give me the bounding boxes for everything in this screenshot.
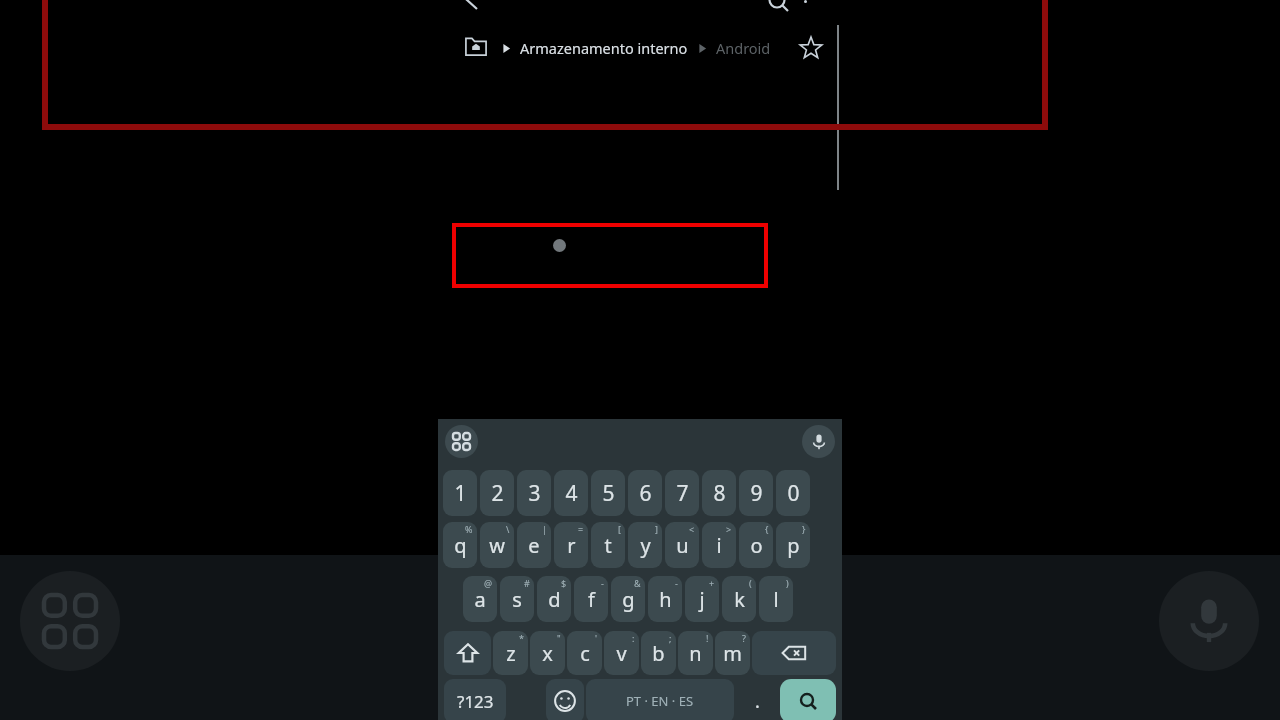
button[interactable]: n — [678, 631, 713, 675]
staticText: ?123 — [457, 690, 494, 713]
button[interactable]: q — [443, 522, 477, 568]
staticText: o — [750, 532, 763, 559]
staticText: y — [640, 532, 651, 559]
staticText: w — [489, 532, 505, 559]
staticText: < — [689, 523, 695, 535]
button[interactable]: p — [776, 522, 810, 568]
button[interactable]: 2 — [480, 470, 514, 516]
button[interactable]: e — [517, 522, 551, 568]
button[interactable]: t — [591, 522, 625, 568]
staticText: 2 — [491, 479, 504, 508]
button[interactable]: o — [739, 522, 773, 568]
button[interactable]: w — [480, 522, 514, 568]
button[interactable]: k — [722, 576, 756, 622]
staticText: " — [557, 632, 561, 644]
button[interactable]: v — [604, 631, 639, 675]
button[interactable]: 0 — [776, 470, 810, 516]
staticText: } — [802, 523, 806, 535]
button[interactable]: h — [648, 576, 682, 622]
staticText: > — [726, 523, 732, 535]
button[interactable]: 1 — [443, 470, 477, 516]
button[interactable]: Keyboard options — [445, 425, 478, 458]
button[interactable]: a — [463, 576, 497, 622]
staticText: 4 — [565, 479, 578, 508]
staticText: a — [474, 586, 486, 613]
staticText: e — [528, 532, 540, 559]
staticText: ' — [595, 632, 598, 644]
button[interactable]: 7 — [665, 470, 699, 516]
staticText: 1 — [454, 479, 467, 508]
button[interactable]: 8 — [702, 470, 736, 516]
staticText: d — [548, 586, 561, 613]
staticText: @ — [484, 577, 493, 589]
staticText: p — [787, 532, 800, 559]
staticText: c — [580, 640, 590, 667]
button[interactable]: Search — [780, 679, 836, 720]
staticText: \ — [506, 523, 510, 535]
staticText: f — [588, 586, 595, 613]
button[interactable]: Voice input — [802, 425, 835, 458]
button[interactable]: 9 — [739, 470, 773, 516]
button[interactable]: Backspace — [752, 631, 836, 675]
button[interactable]: x — [530, 631, 565, 675]
button[interactable]: j — [685, 576, 719, 622]
button[interactable] — [464, 36, 488, 60]
button[interactable]: Armazenamento interno — [520, 38, 688, 58]
staticText: : — [632, 632, 635, 644]
button[interactable]: Favorite — [798, 35, 824, 61]
button[interactable]: 3 — [517, 470, 551, 516]
button[interactable]: PT · EN · ES — [586, 679, 734, 720]
staticText: | — [542, 523, 547, 535]
button[interactable]: Search — [764, 0, 790, 13]
button[interactable]: s — [500, 576, 534, 622]
button[interactable]: i — [702, 522, 736, 568]
staticText: $ — [561, 577, 567, 589]
staticText: ] — [655, 523, 658, 535]
staticText: ( — [749, 577, 752, 589]
staticText: s — [512, 586, 522, 613]
button[interactable]: f — [574, 576, 608, 622]
button[interactable]: r — [554, 522, 588, 568]
staticText: x — [542, 640, 553, 667]
button[interactable]: 6 — [628, 470, 662, 516]
button[interactable]: y — [628, 522, 662, 568]
staticText: j — [699, 586, 705, 613]
staticText: g — [622, 586, 635, 613]
button[interactable] — [452, 223, 768, 288]
staticText: 3 — [528, 479, 541, 508]
button[interactable]: Shift — [444, 631, 491, 675]
staticText: t — [604, 532, 612, 559]
staticText: . — [755, 689, 760, 714]
button[interactable]: 4 — [554, 470, 588, 516]
button[interactable]: c — [567, 631, 602, 675]
button[interactable]: b — [641, 631, 676, 675]
button[interactable]: Android — [716, 38, 771, 58]
button[interactable]: d — [537, 576, 571, 622]
staticText: - — [601, 577, 604, 589]
button[interactable]: u — [665, 522, 699, 568]
staticText: ? — [742, 632, 746, 644]
button[interactable]: Emoji — [546, 679, 584, 720]
staticText: 0 — [787, 479, 800, 508]
button[interactable]: More options — [792, 0, 818, 5]
staticText: & — [634, 577, 641, 589]
staticText: q — [454, 532, 467, 559]
button[interactable]: z — [493, 631, 528, 675]
staticText: 6 — [639, 479, 652, 508]
staticText: 7 — [676, 479, 689, 508]
button[interactable]: Back — [458, 0, 486, 14]
staticText: ) — [786, 577, 789, 589]
staticText: - — [675, 577, 678, 589]
staticText: { — [765, 523, 769, 535]
button[interactable]: m — [715, 631, 750, 675]
staticText: 8 — [713, 479, 726, 508]
button[interactable]: 5 — [591, 470, 625, 516]
button[interactable]: g — [611, 576, 645, 622]
staticText: % — [465, 523, 473, 535]
button[interactable]: l — [759, 576, 793, 622]
button[interactable]: . — [736, 679, 778, 720]
button[interactable]: ?123 — [444, 679, 506, 720]
staticText: [ — [618, 523, 621, 535]
staticText: v — [616, 640, 627, 667]
staticText: m — [723, 640, 742, 667]
